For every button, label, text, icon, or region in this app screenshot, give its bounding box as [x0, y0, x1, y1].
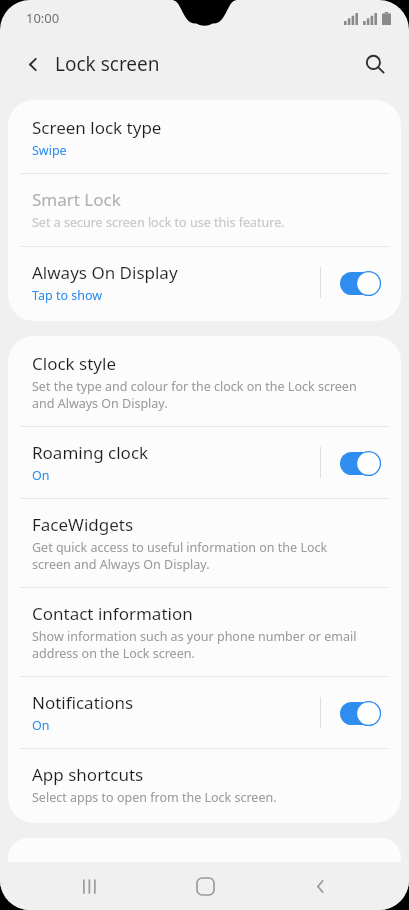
staticText: On — [32, 467, 50, 484]
button[interactable]: Smart Lock — [8, 174, 401, 246]
button[interactable]: Toggle Always On Display — [335, 266, 385, 300]
button[interactable]: Home — [178, 862, 232, 910]
staticText: Set the type and colour for the clock on… — [32, 378, 363, 412]
staticText: Smart Lock — [32, 188, 121, 211]
staticText: Clock style — [32, 352, 116, 375]
staticText: Notifications — [32, 691, 134, 714]
staticText: Screen lock type — [32, 116, 162, 139]
button[interactable]: Toggle Roaming clock — [335, 446, 385, 480]
button[interactable]: Screen lock type — [8, 100, 401, 173]
staticText: Always On Display — [32, 261, 178, 284]
button[interactable]: FaceWidgets — [8, 499, 401, 587]
button[interactable]: Back — [12, 43, 54, 85]
button[interactable]: Contact information — [8, 588, 401, 676]
staticText: Lock screen — [55, 51, 160, 77]
button[interactable]: Search — [354, 43, 396, 85]
button[interactable]: Always On Display — [8, 247, 401, 321]
button[interactable]: Toggle Notifications — [335, 696, 385, 730]
button[interactable]: Back — [293, 862, 347, 910]
staticText: Tap to show — [32, 287, 103, 304]
staticText: Roaming clock — [32, 441, 149, 464]
staticText: Swipe — [32, 142, 67, 159]
staticText: Show information such as your phone numb… — [32, 628, 363, 662]
staticText: App shortcuts — [32, 763, 144, 786]
button[interactable] — [8, 838, 401, 878]
button[interactable]: Roaming clock — [8, 427, 401, 498]
staticText: Select apps to open from the Lock screen… — [32, 789, 277, 806]
button[interactable]: Notifications — [8, 677, 401, 748]
button[interactable]: Recent apps — [62, 862, 116, 910]
staticText: 10:00 — [26, 9, 60, 27]
staticText: Get quick access to useful information o… — [32, 539, 363, 573]
staticText: FaceWidgets — [32, 513, 134, 536]
button[interactable]: App shortcuts — [8, 749, 401, 823]
button[interactable]: Clock style — [8, 336, 401, 426]
staticText: Set a secure screen lock to use this fea… — [32, 214, 285, 231]
staticText: Contact information — [32, 602, 193, 625]
staticText: On — [32, 717, 50, 734]
